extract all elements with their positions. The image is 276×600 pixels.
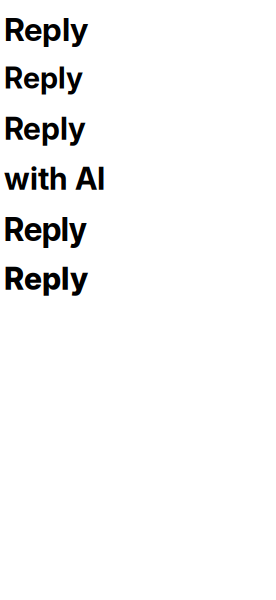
staticText: Reply bbox=[4, 210, 87, 249]
staticText: with AI bbox=[4, 160, 105, 197]
staticText: Reply bbox=[4, 110, 86, 147]
staticText: Reply bbox=[4, 260, 88, 297]
staticText: Reply bbox=[4, 10, 88, 49]
staticText: Reply bbox=[4, 60, 83, 95]
